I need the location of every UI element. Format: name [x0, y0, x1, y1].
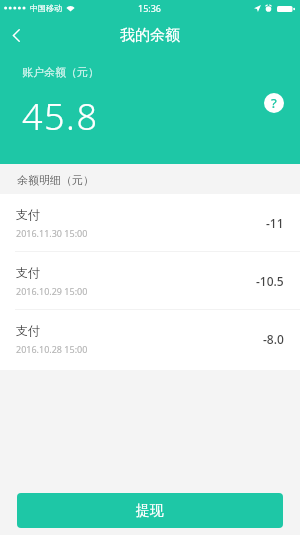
- staticText: 45.8: [22, 92, 99, 141]
- button[interactable]: 支付: [0, 252, 300, 309]
- button[interactable]: Back: [0, 17, 34, 53]
- staticText: 2016.10.28 15:00: [16, 343, 88, 355]
- staticText: 2016.11.30 15:00: [16, 227, 88, 239]
- staticText: 余额明细（元）: [17, 173, 94, 187]
- staticText: 2016.10.29 15:00: [16, 285, 88, 297]
- staticText: ?: [271, 94, 277, 112]
- staticText: -11: [266, 215, 284, 231]
- staticText: 账户余额（元）: [22, 65, 99, 79]
- staticText: 支付: [16, 207, 40, 222]
- staticText: -10.5: [256, 273, 284, 289]
- button[interactable]: Help: [264, 93, 284, 113]
- staticText: 我的余额: [120, 26, 180, 45]
- staticText: 支付: [16, 323, 40, 338]
- button[interactable]: 支付: [0, 194, 300, 251]
- staticText: 15:36: [138, 2, 162, 14]
- staticText: -8.0: [263, 331, 284, 347]
- staticText: 支付: [16, 265, 40, 280]
- button[interactable]: 支付: [0, 310, 300, 367]
- staticText: 中国移动: [30, 3, 62, 13]
- staticText: 提现: [136, 502, 164, 520]
- button[interactable]: 提现: [17, 493, 283, 528]
